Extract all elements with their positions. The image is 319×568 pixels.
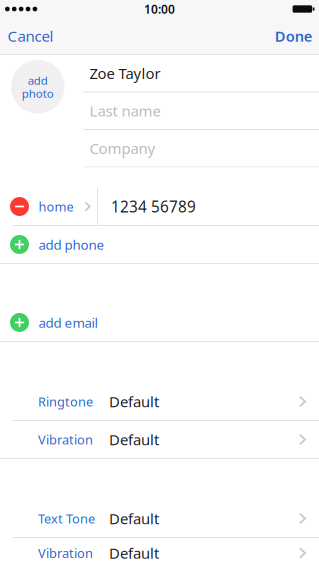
staticText: Cancel [7,26,53,46]
button[interactable]: add phone [0,226,319,263]
staticText: Default [109,543,159,563]
staticText: Vibration [38,544,93,562]
staticText: 10:00 [144,1,175,17]
button[interactable]: 1234 56789 [98,188,319,225]
button[interactable]: Vibration [0,534,319,568]
staticText: add phone [38,235,104,254]
button[interactable]: Text Tone [0,500,319,537]
staticText: Text Tone [38,510,95,527]
staticText: Zoe Taylor [89,63,160,83]
button[interactable]: add email [0,304,319,341]
staticText: Default [109,391,159,412]
button[interactable]: Zoe Taylor [83,55,319,91]
staticText: add email [38,313,97,332]
button[interactable]: Last name [83,92,319,129]
button[interactable]: home [0,188,97,225]
button[interactable]: Company [83,130,319,166]
staticText: Company [89,138,155,158]
button[interactable]: Add photo [11,60,64,113]
button[interactable]: Cancel [0,17,65,55]
staticText: 1234 56789 [111,196,196,217]
button[interactable]: Ringtone [0,383,319,420]
staticText: Done [275,26,313,46]
staticText: Default [109,508,159,529]
button[interactable]: Vibration [0,421,319,458]
staticText: home [38,198,73,215]
staticText: Ringtone [38,393,93,410]
staticText: Default [109,429,159,450]
staticText: Last name [89,101,160,121]
staticText: Vibration [38,431,93,448]
button[interactable]: Done [263,17,319,55]
staticText: photo [22,85,54,101]
staticText: add [28,72,48,88]
